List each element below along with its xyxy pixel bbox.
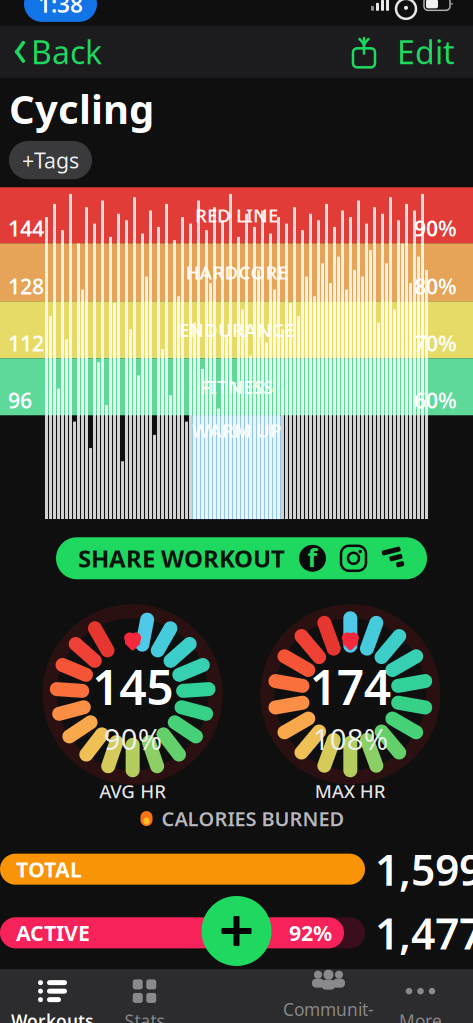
- staticText: RED LINE: [195, 203, 278, 228]
- staticText: Edit: [397, 31, 455, 73]
- staticText: ACTIVE: [16, 919, 90, 947]
- staticText: 90%: [104, 719, 162, 758]
- staticText: 96: [8, 386, 32, 414]
- button[interactable]: Stats: [98, 979, 190, 1023]
- staticText: 80%: [414, 272, 457, 300]
- staticText: 60%: [414, 386, 457, 414]
- staticText: +Tags: [22, 146, 79, 174]
- staticText: MAX HR: [315, 778, 386, 803]
- staticText: 92%: [289, 919, 332, 947]
- staticText: SHARE WORKOUT: [78, 542, 285, 574]
- staticText: 145: [92, 654, 173, 718]
- staticText: 144: [8, 214, 44, 242]
- staticText: Community: [283, 998, 374, 1023]
- staticText: 174: [310, 654, 391, 718]
- staticText: Stats: [124, 1009, 164, 1023]
- staticText: 112: [8, 329, 44, 357]
- staticText: 70%: [414, 329, 457, 357]
- button[interactable]: Back: [0, 25, 102, 79]
- staticText: 128: [8, 272, 44, 300]
- button[interactable]: Add workout: [201, 896, 271, 966]
- button[interactable]: Workouts: [6, 979, 98, 1023]
- staticText: TOTAL: [16, 855, 82, 883]
- staticText: 1,477: [375, 904, 473, 961]
- staticText: Cycling: [9, 82, 154, 135]
- staticText: 90%: [414, 214, 457, 242]
- button[interactable]: SHARE WORKOUT: [56, 537, 427, 579]
- staticText: CALORIES BURNED: [161, 805, 344, 832]
- staticText: HARDCORE: [185, 260, 287, 285]
- staticText: ENDURANCE: [179, 317, 294, 342]
- button[interactable]: Edit: [387, 25, 473, 79]
- staticText: 1,599: [375, 841, 473, 897]
- staticText: AVG HR: [99, 778, 166, 803]
- staticText: f: [307, 540, 317, 574]
- button[interactable]: More: [374, 979, 466, 1023]
- staticText: FITNESS: [200, 374, 273, 399]
- staticText: WARM UP: [192, 418, 281, 443]
- staticText: Workouts: [11, 1009, 94, 1023]
- staticText: Back: [31, 31, 102, 73]
- staticText: 1:38: [38, 0, 83, 19]
- button[interactable]: Share: [341, 35, 387, 69]
- button[interactable]: Community: [282, 979, 374, 1023]
- staticText: More: [399, 1009, 442, 1023]
- staticText: 108%: [313, 719, 388, 758]
- button[interactable]: +Tags: [9, 141, 92, 179]
